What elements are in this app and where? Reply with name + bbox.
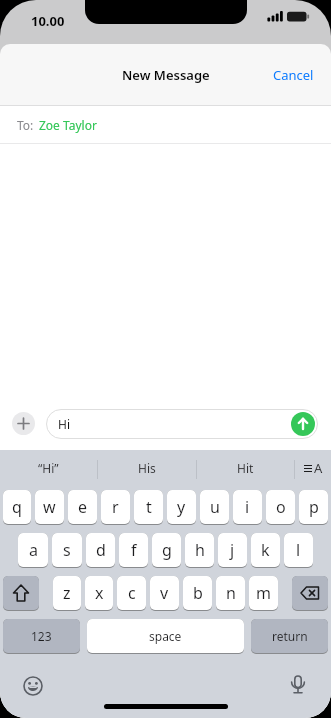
staticText: r xyxy=(112,496,119,518)
button[interactable]: g xyxy=(152,533,181,568)
button[interactable]: i xyxy=(233,490,262,525)
button[interactable]: space xyxy=(87,619,244,654)
button[interactable]: n xyxy=(216,576,245,611)
button[interactable]: o xyxy=(266,490,295,525)
button[interactable] xyxy=(287,675,309,697)
staticText: i xyxy=(245,496,250,518)
staticText: return xyxy=(272,628,308,644)
button[interactable]: h xyxy=(185,533,214,568)
staticText: p xyxy=(309,496,319,518)
staticText: A xyxy=(314,459,323,477)
staticText: Hi xyxy=(58,416,70,432)
button[interactable]: y xyxy=(167,490,196,525)
button[interactable]: Hit xyxy=(197,450,294,485)
staticText: Zoe Taylor xyxy=(39,117,97,133)
staticText: e xyxy=(78,496,88,518)
button[interactable] xyxy=(12,412,35,435)
button[interactable]: k xyxy=(251,533,280,568)
staticText: w xyxy=(43,496,56,518)
button[interactable]: To: xyxy=(0,106,331,143)
staticText: New Message xyxy=(122,66,210,84)
staticText: z xyxy=(63,582,71,604)
button[interactable] xyxy=(291,412,315,436)
button[interactable]: 123 xyxy=(3,619,80,654)
staticText: f xyxy=(131,539,137,561)
staticText: To: xyxy=(17,117,34,133)
button[interactable]: r xyxy=(101,490,130,525)
button[interactable]: q xyxy=(3,490,31,525)
button[interactable]: w xyxy=(35,490,64,525)
button[interactable] xyxy=(292,576,328,611)
button[interactable] xyxy=(22,675,44,697)
staticText: q xyxy=(12,496,22,518)
button[interactable]: a xyxy=(18,533,48,568)
button[interactable]: p xyxy=(299,490,328,525)
staticText: d xyxy=(96,539,106,561)
staticText: 123 xyxy=(31,628,52,644)
staticText: s xyxy=(63,539,71,561)
button[interactable]: j xyxy=(218,533,247,568)
staticText: b xyxy=(193,582,203,604)
staticText: “Hi” xyxy=(38,460,59,476)
staticText: g xyxy=(162,539,172,561)
staticText: h xyxy=(195,539,205,561)
staticText: n xyxy=(226,582,236,604)
button[interactable] xyxy=(3,576,39,611)
staticText: m xyxy=(256,582,271,604)
button[interactable]: m xyxy=(249,576,278,611)
button[interactable]: x xyxy=(85,576,113,611)
button[interactable]: c xyxy=(117,576,146,611)
button[interactable]: e xyxy=(68,490,97,525)
staticText: a xyxy=(29,539,38,561)
button[interactable]: A xyxy=(295,450,331,485)
button[interactable]: return xyxy=(251,619,328,654)
staticText: Hit xyxy=(237,460,254,476)
staticText: l xyxy=(296,539,301,561)
staticText: y xyxy=(177,496,186,518)
button[interactable]: t xyxy=(134,490,163,525)
button[interactable]: His xyxy=(98,450,196,485)
button[interactable]: “Hi” xyxy=(0,450,97,485)
button[interactable]: z xyxy=(53,576,81,611)
staticText: t xyxy=(146,496,152,518)
button[interactable]: u xyxy=(200,490,229,525)
staticText: 10.00 xyxy=(31,12,65,30)
button[interactable]: l xyxy=(284,533,313,568)
staticText: o xyxy=(276,496,286,518)
button[interactable]: s xyxy=(52,533,82,568)
staticText: c xyxy=(128,582,136,604)
staticText: x xyxy=(95,582,104,604)
staticText: His xyxy=(138,460,156,476)
button[interactable]: b xyxy=(183,576,212,611)
staticText: v xyxy=(160,582,169,604)
staticText: Cancel xyxy=(273,66,314,84)
staticText: k xyxy=(261,539,270,561)
button[interactable]: Cancel xyxy=(266,59,321,91)
button[interactable]: f xyxy=(119,533,148,568)
staticText: j xyxy=(230,539,235,561)
staticText: space xyxy=(149,628,182,644)
staticText: u xyxy=(210,496,220,518)
button[interactable]: v xyxy=(150,576,179,611)
button[interactable]: d xyxy=(86,533,115,568)
